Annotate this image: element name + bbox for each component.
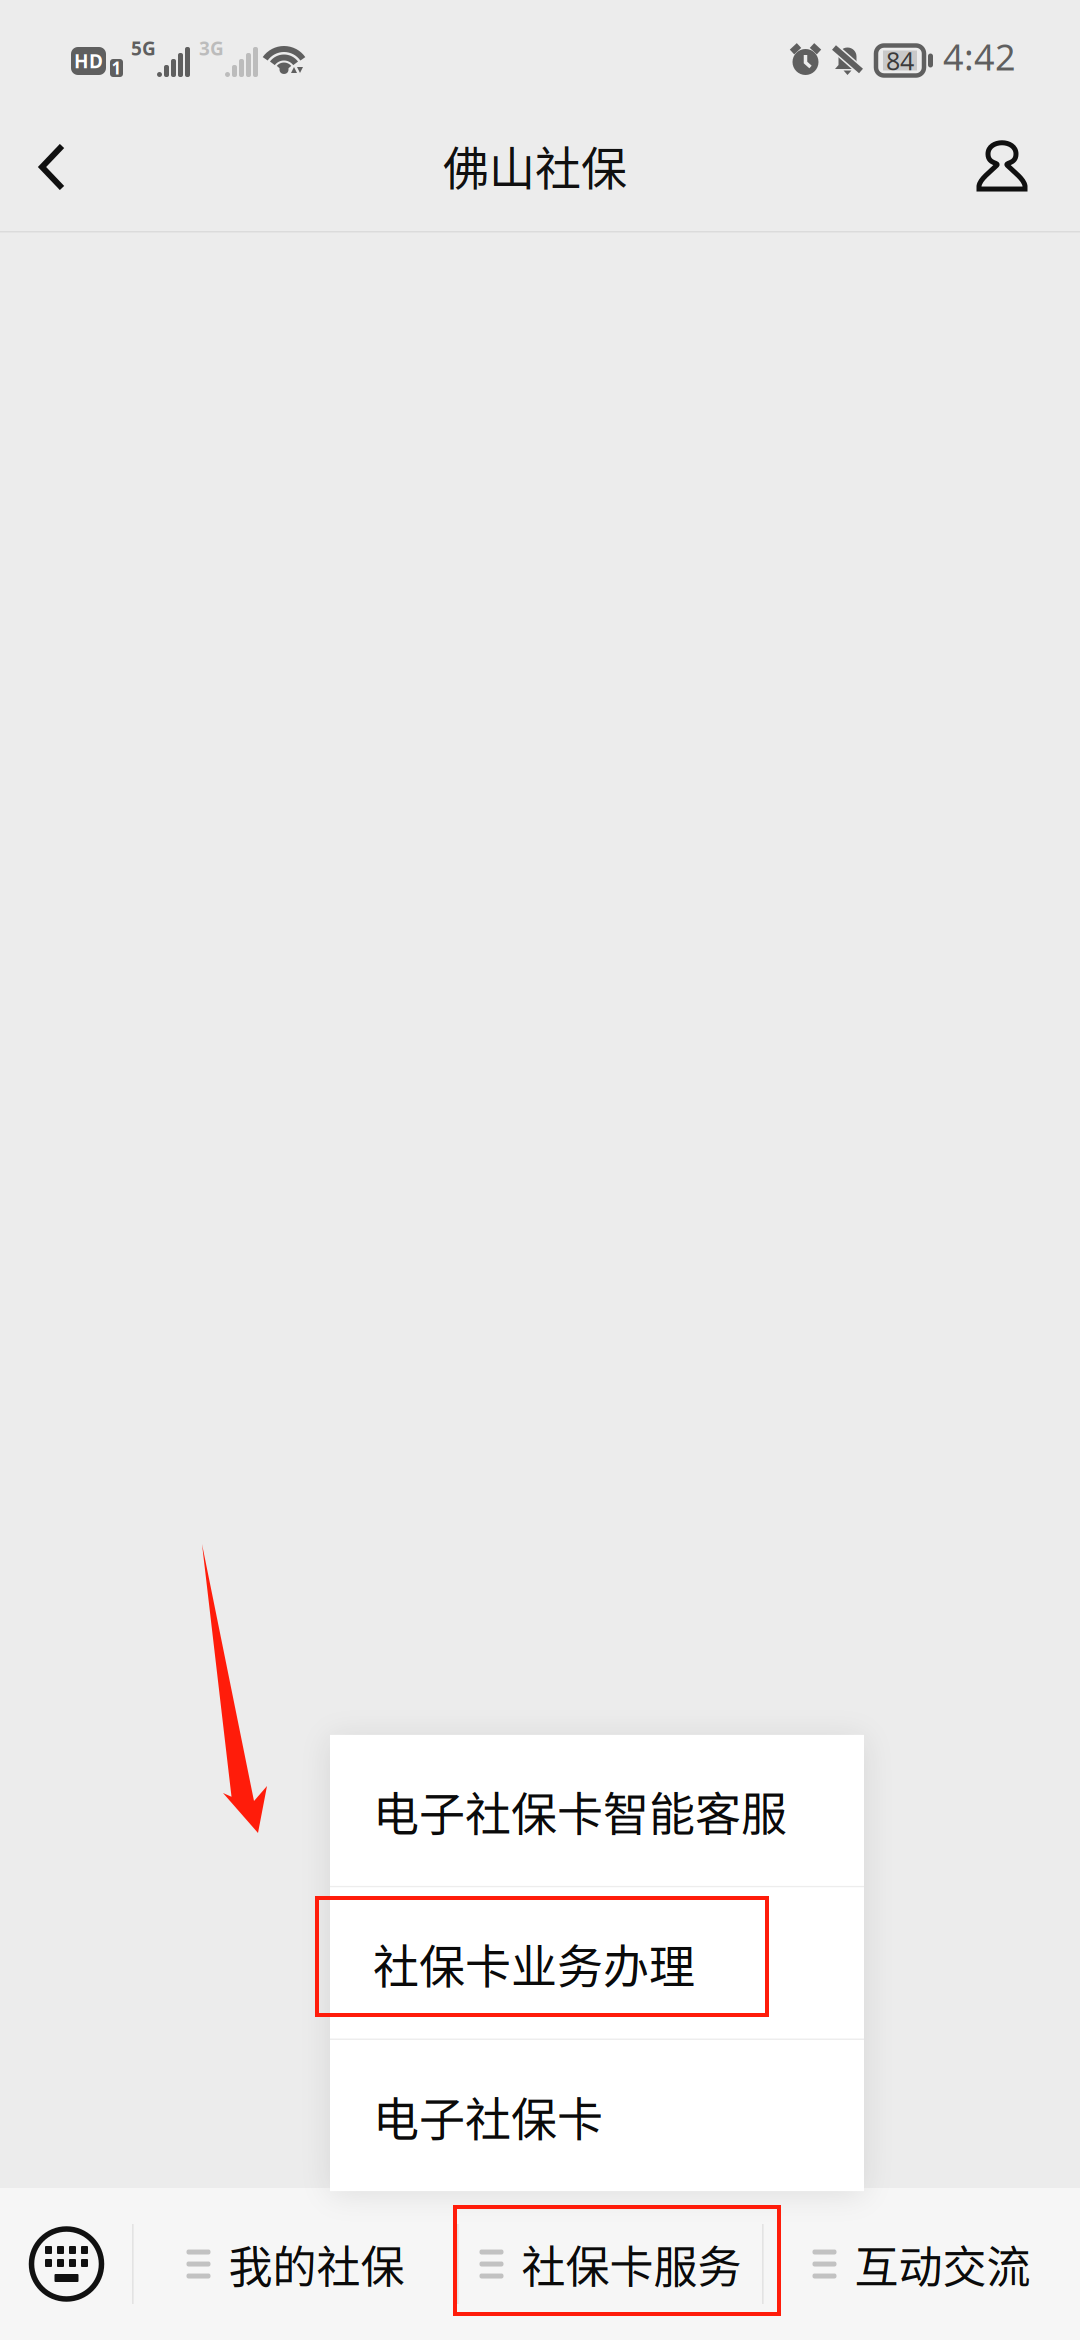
button[interactable]: Keyboard	[0, 2188, 133, 2340]
button[interactable]: Back	[0, 102, 104, 232]
button[interactable]: 互动交流	[763, 2188, 1080, 2340]
staticText: 5G	[131, 35, 156, 61]
staticText: 1	[111, 56, 121, 80]
staticText: 佛山社保	[443, 132, 627, 198]
staticText: 社保卡服务	[521, 2232, 741, 2296]
button[interactable]: 社保卡服务	[458, 2188, 763, 2340]
button[interactable]: 电子社保卡智能客服	[330, 1735, 864, 1886]
staticText: 社保卡业务办理	[373, 1930, 695, 1996]
staticText: HD	[74, 48, 103, 74]
button[interactable]: 我的社保	[133, 2188, 458, 2340]
button[interactable]: 社保卡业务办理	[330, 1887, 864, 2038]
staticText: 我的社保	[228, 2232, 404, 2296]
staticText: 互动交流	[854, 2232, 1030, 2296]
staticText: 84	[886, 43, 914, 77]
staticText: 3G	[199, 35, 224, 61]
staticText: 电子社保卡	[373, 2082, 603, 2149]
button[interactable]: Profile	[947, 102, 1057, 232]
staticText: 4:42	[943, 32, 1016, 81]
staticText: 电子社保卡智能客服	[373, 1777, 787, 1844]
button[interactable]: 电子社保卡	[330, 2040, 864, 2191]
